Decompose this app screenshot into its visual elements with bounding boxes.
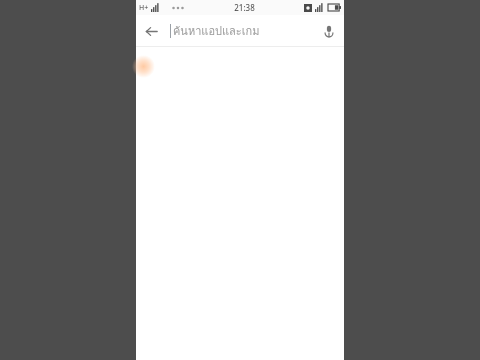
- button[interactable]: Voice search: [314, 16, 344, 46]
- button[interactable]: Back: [136, 16, 166, 46]
- staticText: 21:38: [234, 2, 255, 13]
- button[interactable]: ค้นหาแอปและเกม: [166, 15, 314, 46]
- staticText: H+: [139, 3, 149, 13]
- staticText: ค้นหาแอปและเกม: [173, 22, 260, 39]
